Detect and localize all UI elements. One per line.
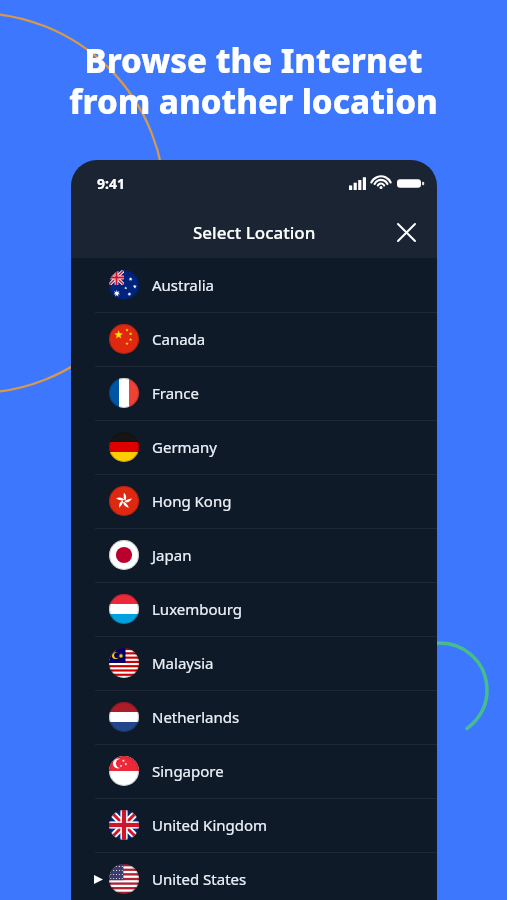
staticText: Canada	[152, 329, 206, 349]
staticText: United Kingdom	[152, 815, 268, 835]
staticText: Hong Kong	[152, 491, 232, 511]
button[interactable]: Australia	[71, 258, 437, 312]
button[interactable]: Hong Kong	[71, 474, 437, 528]
staticText: Select Location	[193, 221, 316, 244]
button[interactable]: Malaysia	[71, 636, 437, 690]
button[interactable]: Japan	[71, 528, 437, 582]
button[interactable]: United States	[71, 852, 437, 900]
button[interactable]: Luxembourg	[71, 582, 437, 636]
button[interactable]: Canada	[71, 312, 437, 366]
button[interactable]: Netherlands	[71, 690, 437, 744]
staticText: Australia	[152, 275, 214, 295]
button[interactable]: France	[71, 366, 437, 420]
staticText: Luxembourg	[152, 599, 243, 619]
button[interactable]: United Kingdom	[71, 798, 437, 852]
staticText: United States	[152, 869, 247, 889]
staticText: Germany	[152, 437, 217, 457]
staticText: Malaysia	[152, 653, 214, 673]
button[interactable]: Germany	[71, 420, 437, 474]
button[interactable]: Singapore	[71, 744, 437, 798]
staticText: Japan	[152, 545, 192, 565]
staticText: Netherlands	[152, 707, 240, 727]
staticText: France	[152, 383, 200, 403]
staticText: Singapore	[152, 761, 224, 781]
button[interactable]: Close	[389, 215, 423, 249]
staticText: 9:41	[97, 174, 125, 193]
staticText: Browse the Internet from another locatio…	[69, 38, 438, 124]
